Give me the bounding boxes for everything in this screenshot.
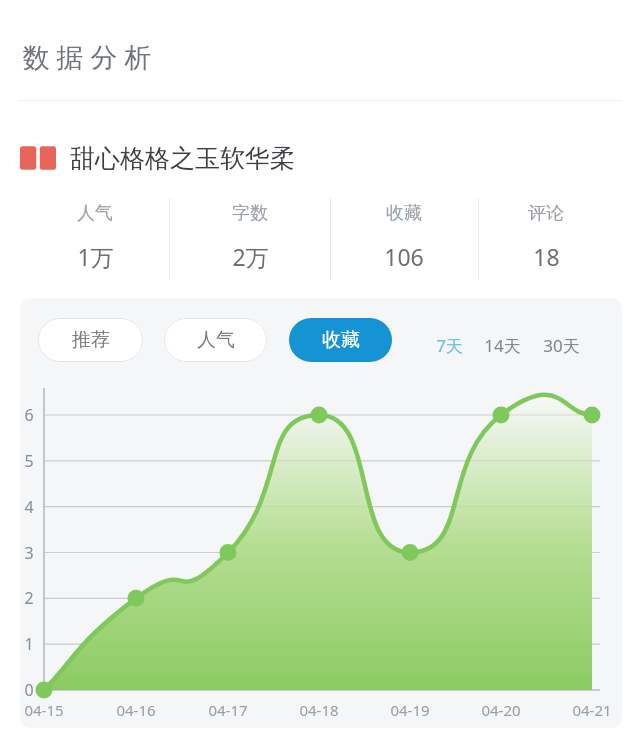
staticText: 04-19 [390, 700, 430, 720]
button[interactable]: 人气 [25, 196, 165, 284]
staticText: 04-18 [299, 700, 339, 720]
staticText: 14天 [484, 334, 521, 357]
staticText: 人气 [197, 328, 235, 352]
staticText: 04-16 [116, 700, 156, 720]
staticText: 04-20 [481, 700, 521, 720]
staticText: 数 据 分 析 [22, 38, 152, 75]
staticText: 2万 [232, 241, 269, 272]
staticText: 106 [384, 241, 424, 272]
other: Book [20, 144, 56, 172]
button[interactable]: Book [20, 138, 620, 178]
button[interactable]: 30天 [541, 332, 582, 358]
staticText: 7天 [436, 334, 463, 357]
button[interactable]: 推荐 [38, 318, 143, 362]
staticText: 0 [24, 679, 34, 701]
staticText: 1万 [77, 241, 114, 272]
staticText: 3 [24, 542, 34, 564]
staticText: 收藏 [322, 328, 360, 352]
staticText: 04-17 [208, 700, 248, 720]
staticText: 甜心格格之玉软华柔 [70, 143, 295, 174]
staticText: 6 [24, 404, 34, 426]
staticText: 18 [533, 241, 560, 272]
staticText: 04-21 [572, 700, 612, 720]
button[interactable]: 字数 [180, 196, 320, 284]
staticText: 人气 [77, 202, 113, 225]
staticText: 04-15 [24, 700, 64, 720]
staticText: 字数 [232, 202, 268, 225]
staticText: 2 [24, 587, 34, 609]
staticText: 推荐 [72, 328, 110, 352]
staticText: 5 [24, 450, 34, 472]
staticText: 收藏 [386, 202, 422, 225]
button[interactable]: 收藏 [289, 318, 392, 362]
staticText: 30天 [543, 334, 580, 357]
staticText: 评论 [528, 202, 564, 225]
button[interactable]: 数 据 分 析 [20, 36, 154, 77]
button[interactable]: 评论 [476, 196, 616, 284]
staticText: 4 [24, 496, 34, 518]
staticText: 1 [24, 633, 34, 655]
button[interactable]: 14天 [482, 332, 523, 358]
button[interactable]: 人气 [164, 318, 267, 362]
button[interactable]: 收藏 [334, 196, 474, 284]
button[interactable]: 7天 [434, 332, 465, 358]
